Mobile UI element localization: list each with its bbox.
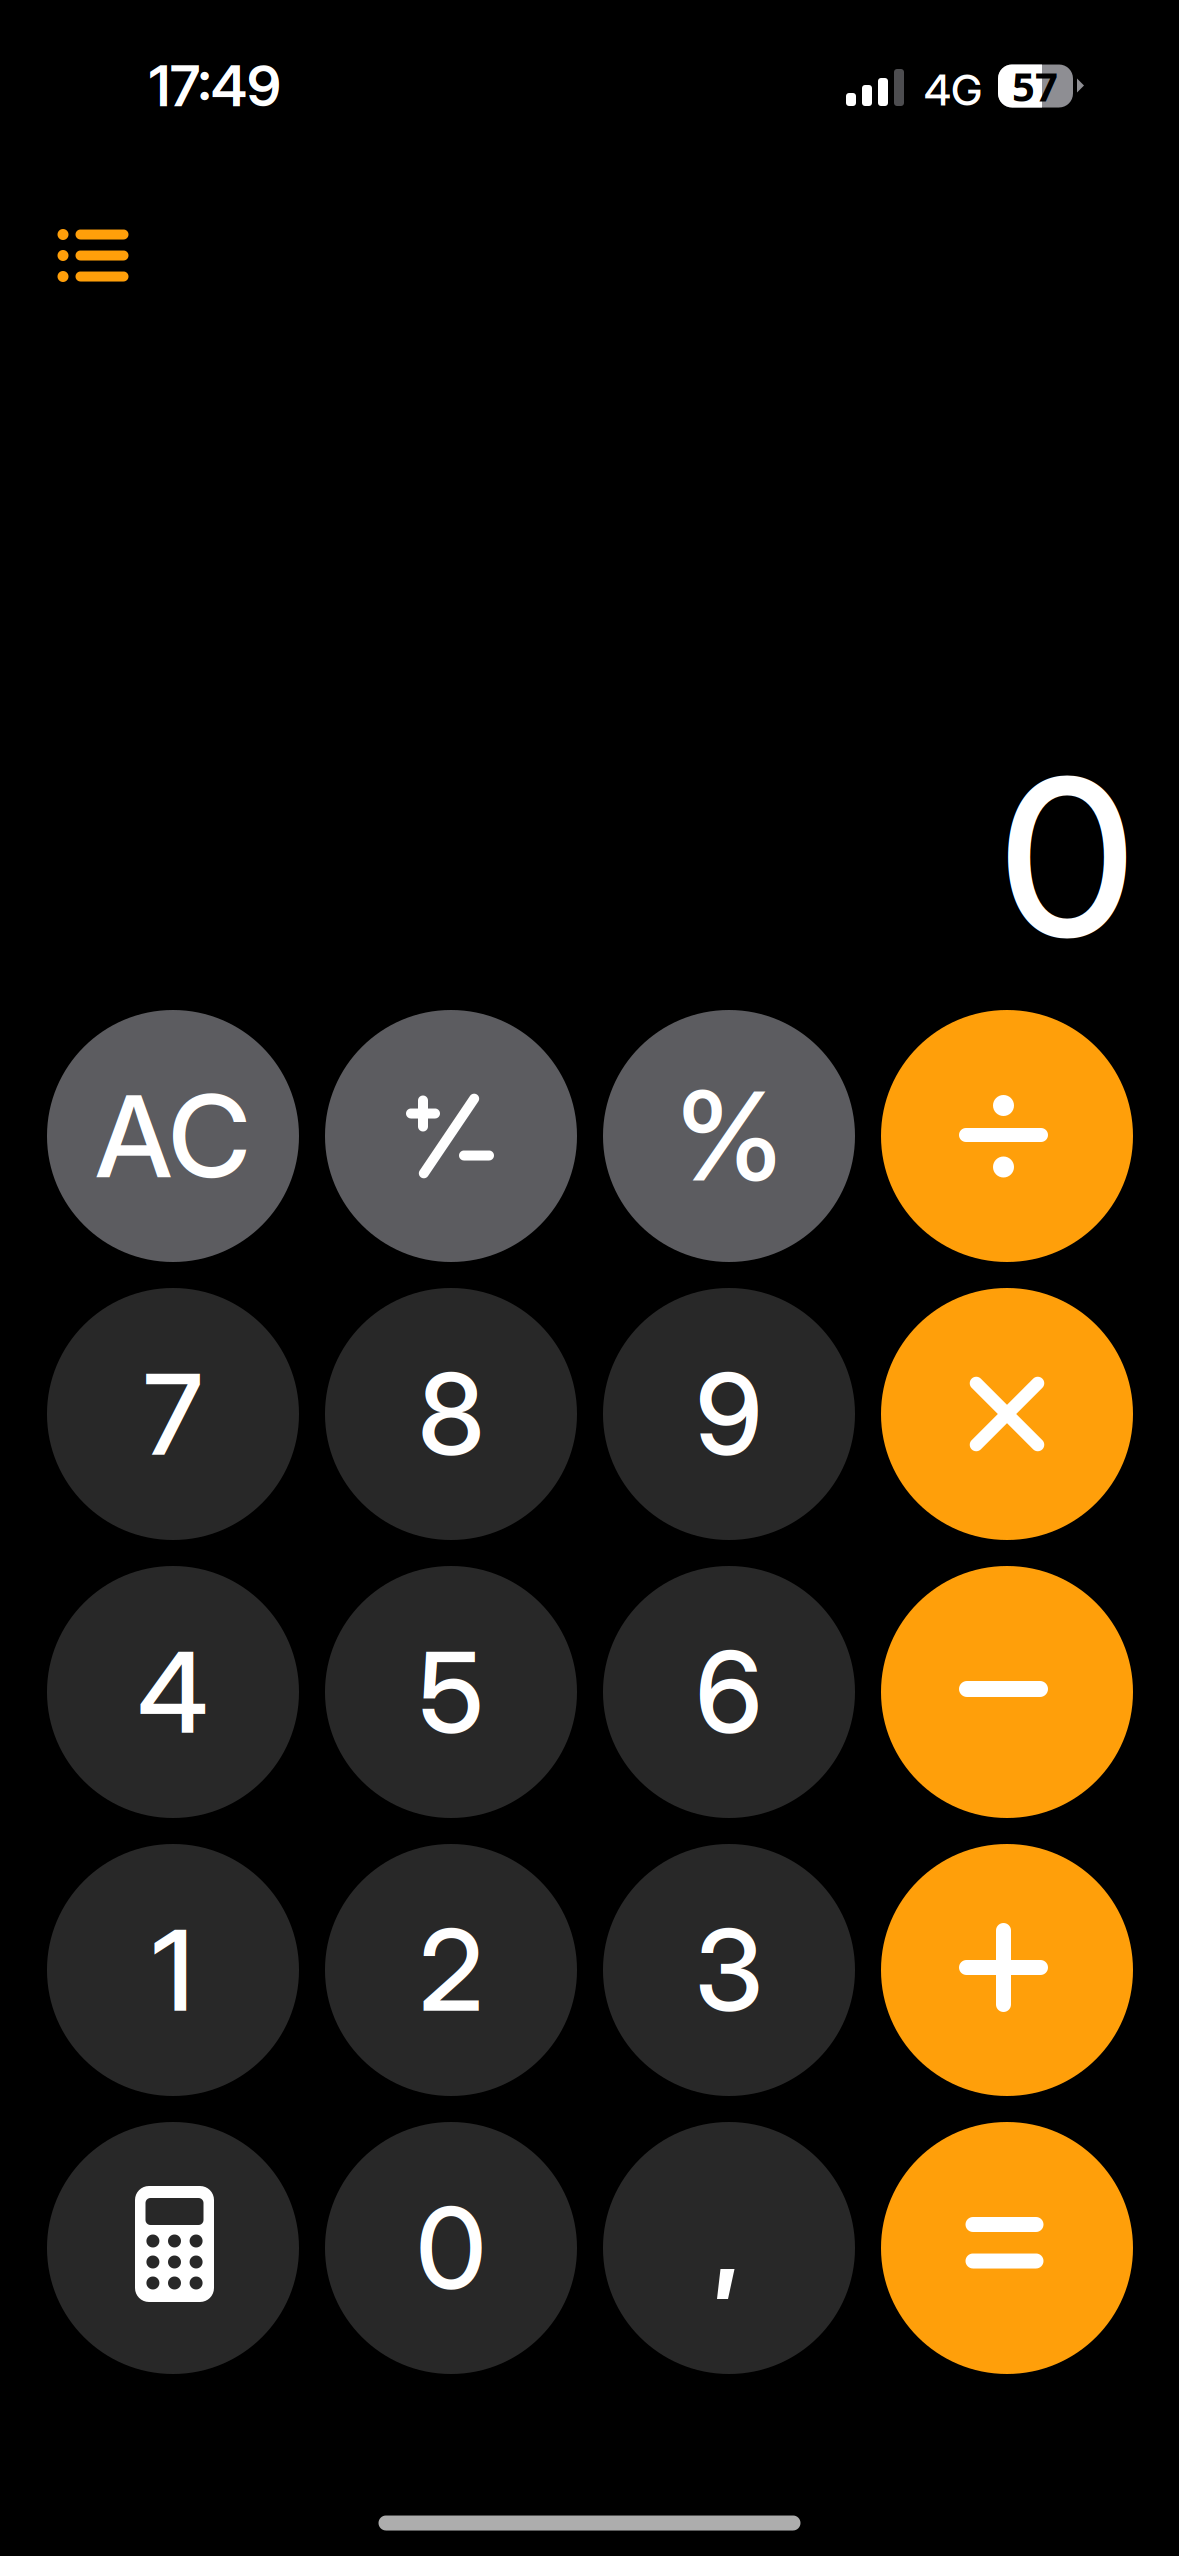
button[interactable]: 0: [325, 2122, 577, 2374]
staticText: 8: [418, 1346, 484, 1482]
button[interactable]: Subtract: [881, 1566, 1133, 1818]
button[interactable]: 2: [325, 1844, 577, 2096]
staticText: 3: [695, 1902, 763, 2038]
button[interactable]: Plus minus: [325, 1010, 577, 1262]
button[interactable]: 1: [47, 1844, 299, 2096]
button[interactable]: Multiply: [881, 1288, 1133, 1540]
staticText: 17:49: [149, 52, 281, 120]
button[interactable]: AC: [47, 1010, 299, 1262]
button[interactable]: %: [603, 1010, 855, 1262]
staticText: AC: [95, 1067, 250, 1204]
staticText: 4G: [924, 64, 982, 116]
button[interactable]: 7: [47, 1288, 299, 1540]
button[interactable]: Equals: [881, 2122, 1133, 2374]
button[interactable]: Add: [881, 1844, 1133, 2096]
button[interactable]: 3: [603, 1844, 855, 2096]
button[interactable]: 5: [325, 1566, 577, 1818]
button[interactable]: Calculator: [47, 2122, 299, 2374]
staticText: 0: [416, 2180, 486, 2316]
staticText: 9: [695, 1346, 762, 1482]
staticText: 4: [137, 1624, 208, 1760]
staticText: %: [675, 1062, 782, 1210]
staticText: 0: [999, 726, 1134, 988]
staticText: 1: [152, 1902, 194, 2038]
button[interactable]: 4: [47, 1566, 299, 1818]
button[interactable]: History: [31, 203, 154, 308]
button[interactable]: Divide: [881, 1010, 1133, 1262]
staticText: 2: [419, 1902, 483, 2038]
staticText: 7: [143, 1346, 202, 1482]
staticText: 6: [695, 1624, 762, 1760]
staticText: 5: [418, 1624, 483, 1760]
button[interactable]: Decimal separator: [603, 2122, 855, 2374]
staticText: 57: [1012, 59, 1058, 112]
button[interactable]: 6: [603, 1566, 855, 1818]
button[interactable]: 9: [603, 1288, 855, 1540]
button[interactable]: 8: [325, 1288, 577, 1540]
